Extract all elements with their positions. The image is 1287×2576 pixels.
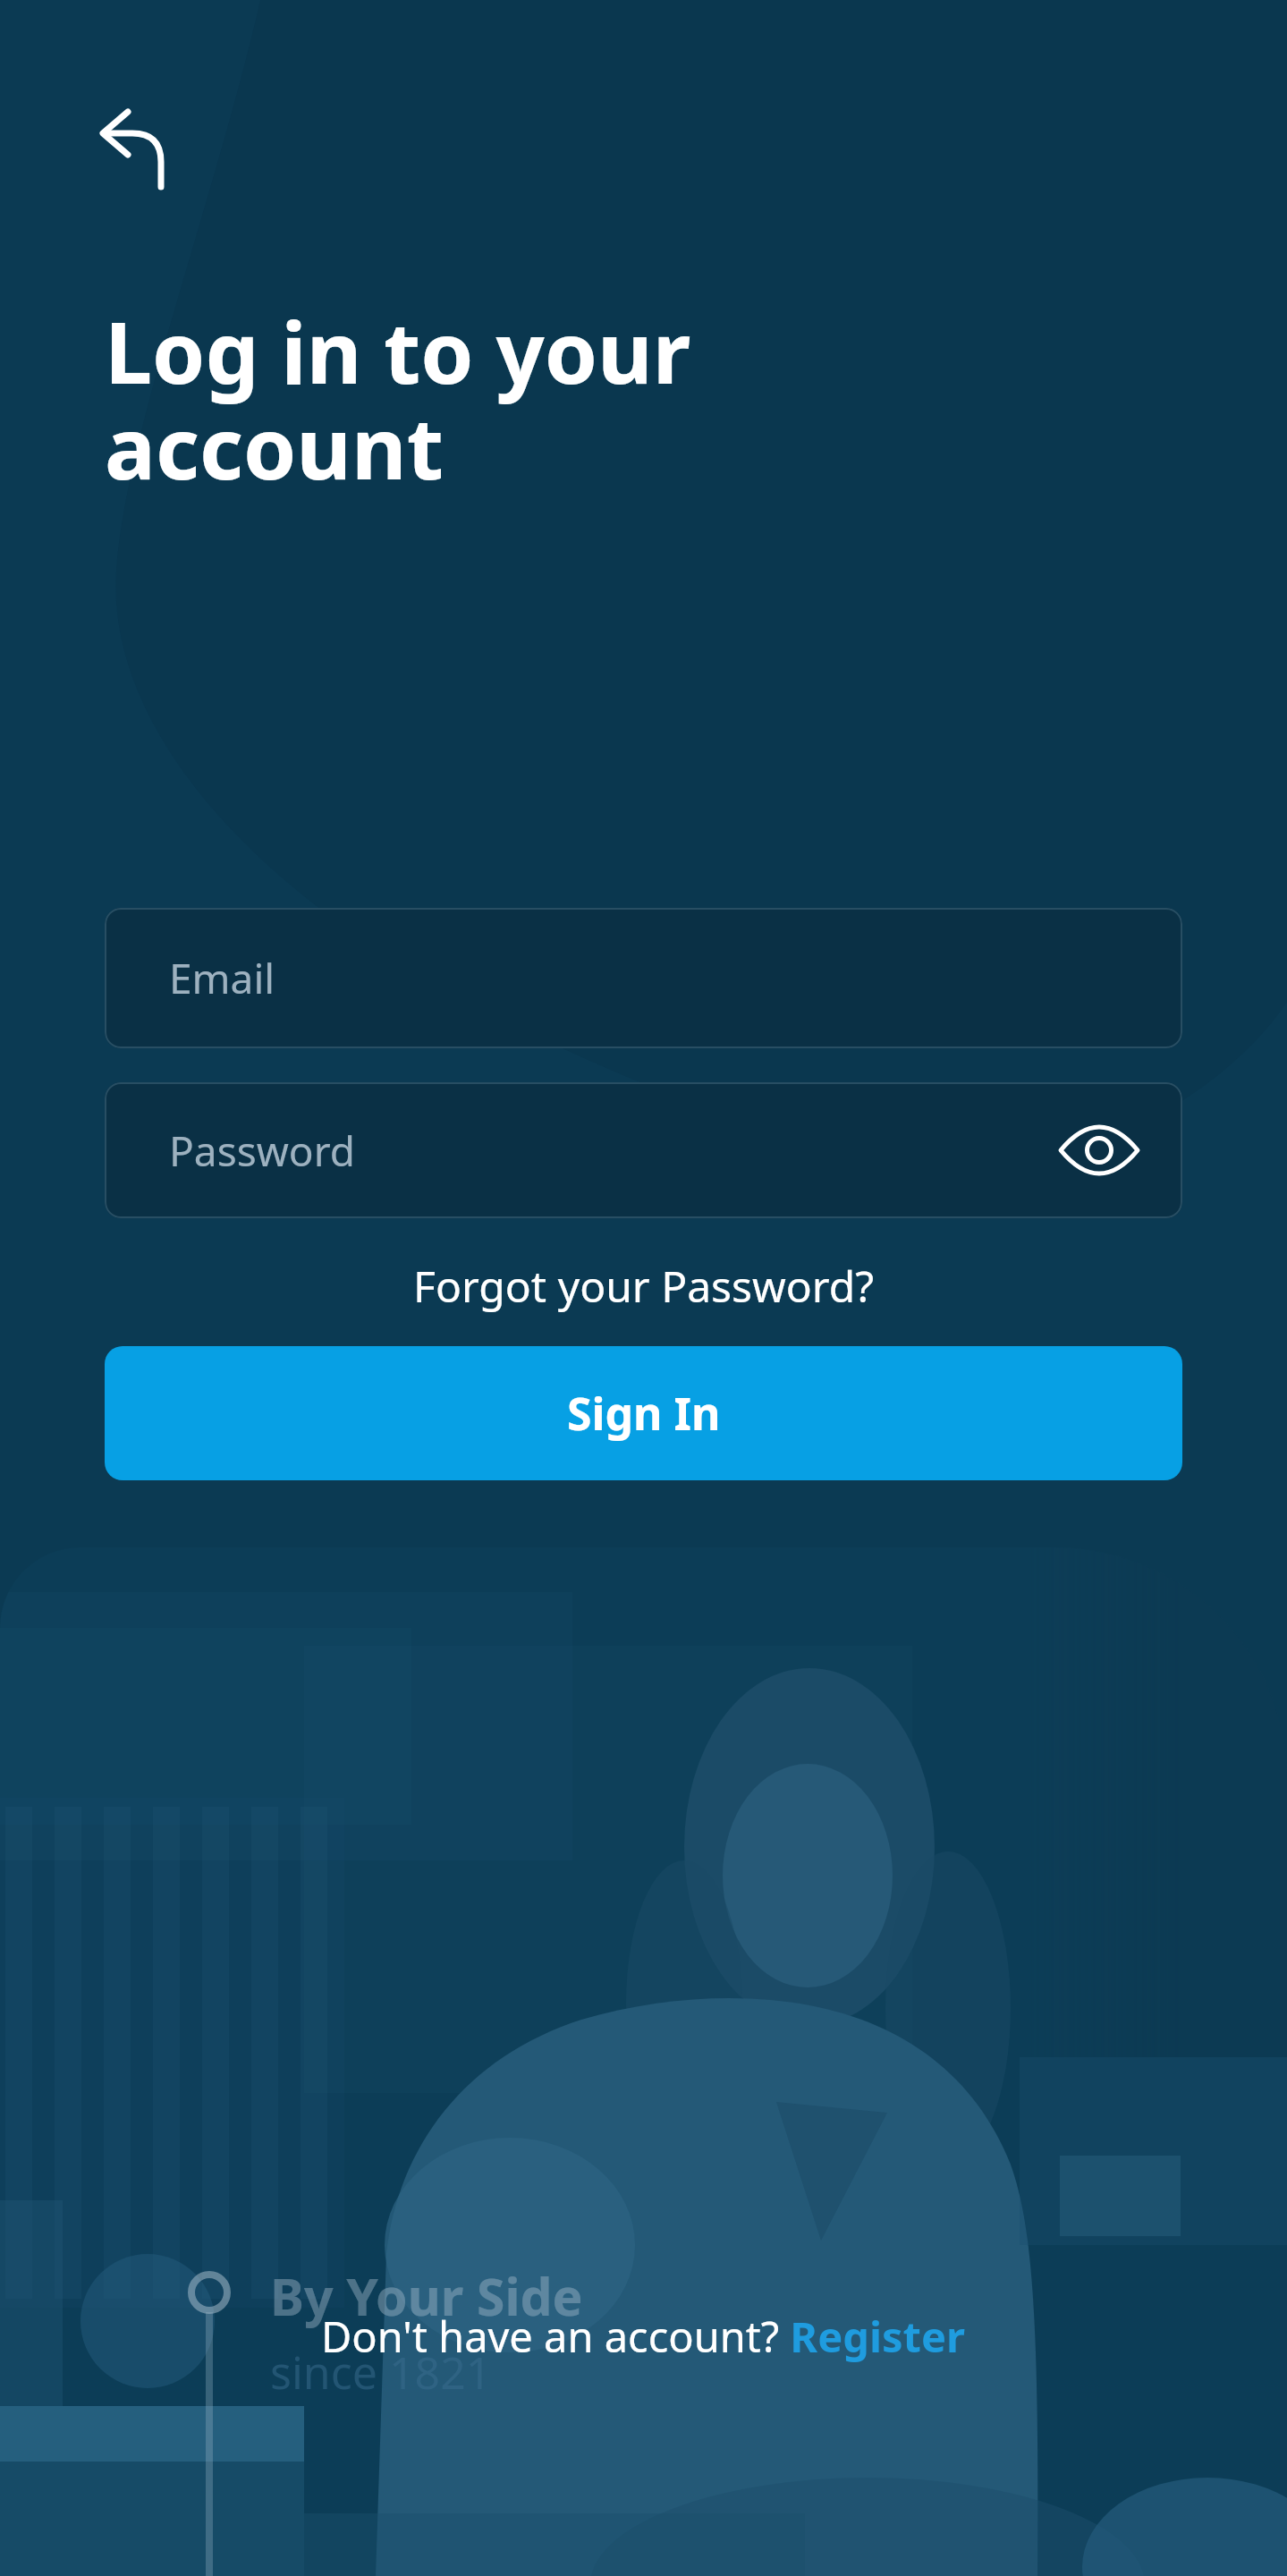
button[interactable]: Forgot your Password? <box>413 1257 875 1315</box>
button[interactable]: Password <box>105 1082 1182 1218</box>
button[interactable]: Email <box>105 908 1182 1048</box>
button[interactable] <box>80 85 188 210</box>
staticText: Email <box>169 950 275 1006</box>
staticText: Sign In <box>567 1383 721 1444</box>
staticText: Password <box>169 1123 356 1179</box>
staticText: since 1821 <box>270 2342 492 2402</box>
staticText: Log in to your account <box>105 292 691 504</box>
button[interactable]: Don't have an account? Register <box>321 2308 966 2365</box>
staticText: By Your Side <box>270 2261 583 2331</box>
button[interactable]: Sign In <box>105 1346 1182 1480</box>
